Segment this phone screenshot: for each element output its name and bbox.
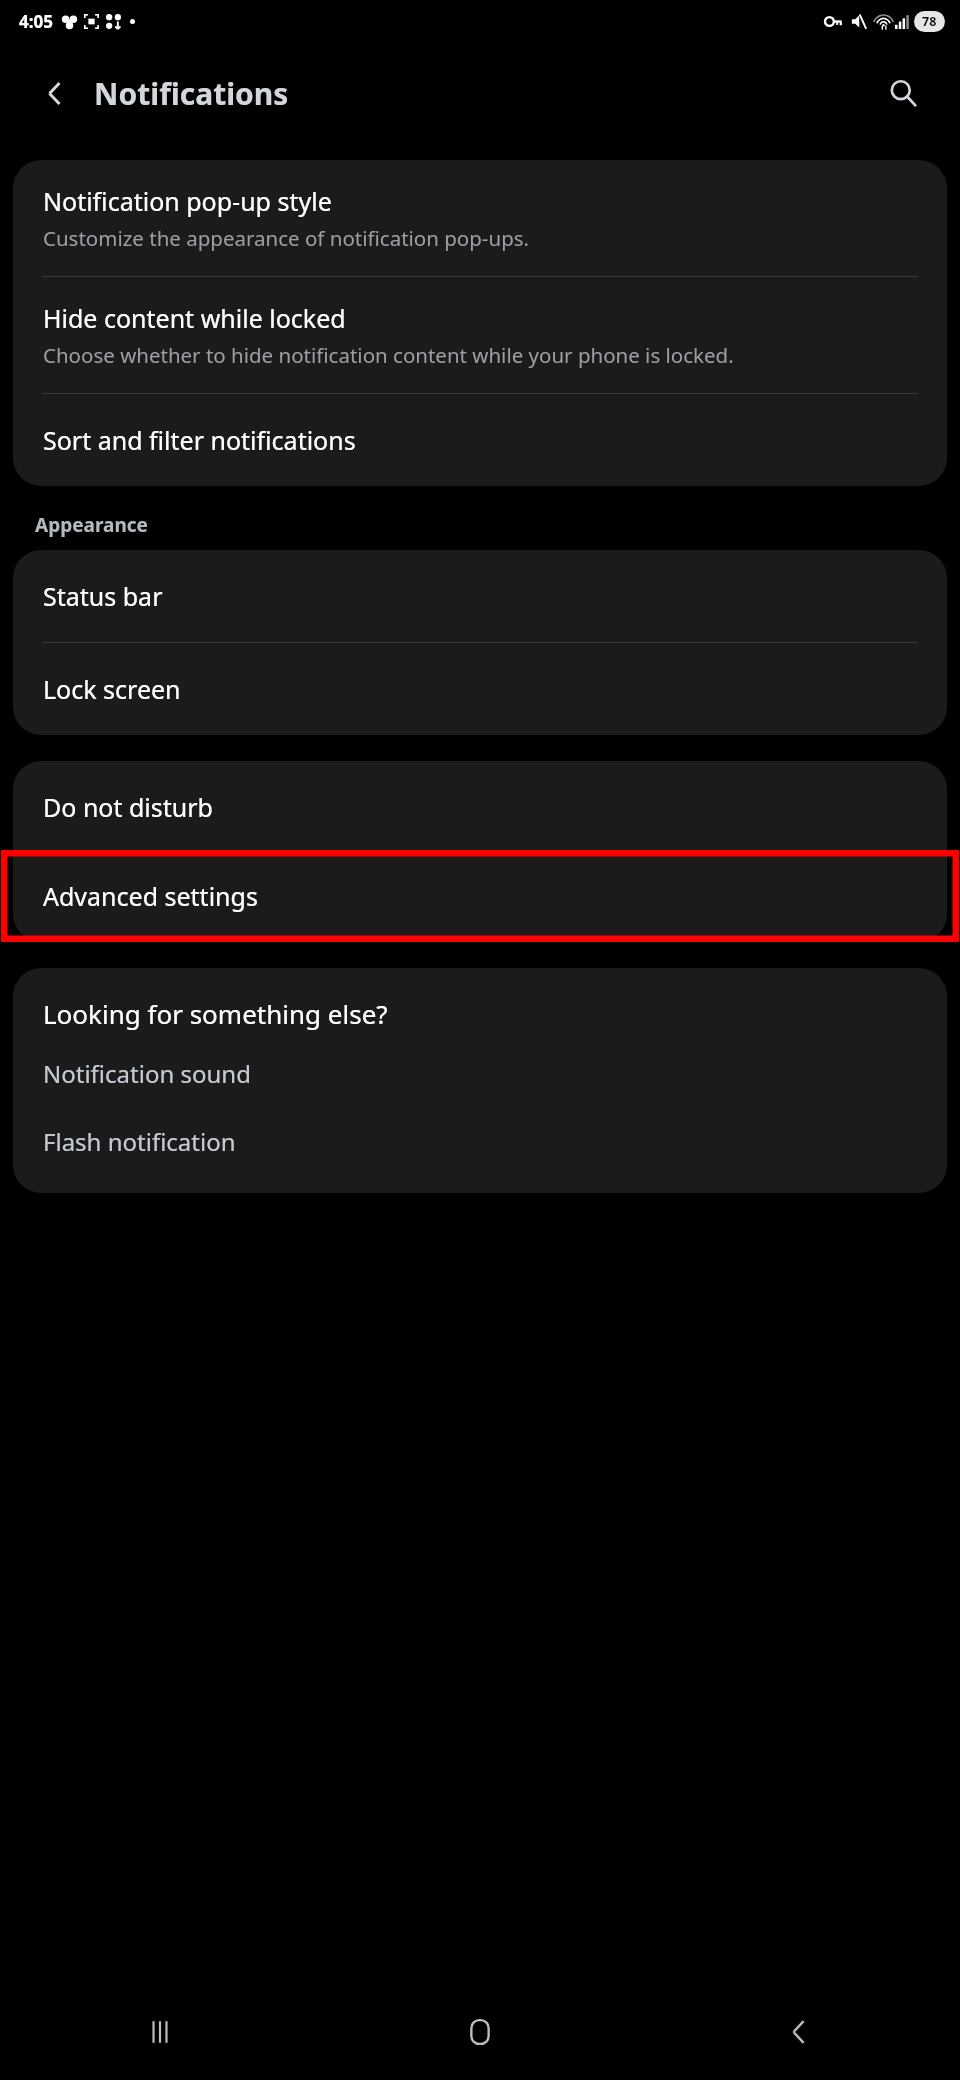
other: Wi-Fi [875,13,892,30]
button[interactable]: Do not disturb [13,761,947,853]
staticText: Customize the appearance of notification… [43,224,530,252]
staticText: Lock screen [43,672,181,706]
button[interactable]: Search [878,68,928,118]
other: Quick Share [106,14,121,29]
button[interactable]: Notification sound [13,1039,947,1107]
button[interactable]: Status bar [13,550,947,642]
staticText: Notifications [94,73,289,114]
staticText: Flash notification [43,1125,236,1158]
staticText: Notification sound [43,1057,251,1090]
staticText: Looking for something else? [43,996,388,1031]
button[interactable]: Sort and filter notifications [13,394,947,486]
button[interactable]: Advanced settings [13,850,947,942]
other: VPN active [825,13,842,30]
other: Sound muted [851,14,866,29]
staticText: 4:05 [19,10,53,33]
staticText: Advanced settings [43,879,258,913]
staticText: Status bar [43,579,163,613]
staticText: Hide content while locked [43,301,346,335]
button[interactable]: Recent apps [0,1984,320,2080]
staticText: Do not disturb [43,790,213,824]
button[interactable]: Home [320,1984,640,2080]
button[interactable]: Hide content while locked [13,277,947,393]
other: Mobile signal [895,15,909,29]
staticText: 78 [922,13,937,30]
staticText: Appearance [35,512,148,538]
button[interactable]: Back [640,1984,960,2080]
staticText: Choose whether to hide notification cont… [43,341,734,369]
staticText: Sort and filter notifications [43,423,356,457]
other: Fan [62,14,77,29]
button[interactable]: Lock screen [13,643,947,735]
button[interactable]: Flash notification [13,1107,947,1175]
staticText: Notification pop-up style [43,184,332,218]
other: Screenshot [84,14,99,29]
button[interactable]: Notification pop-up style [13,160,947,276]
button[interactable]: Navigate up [32,70,78,116]
